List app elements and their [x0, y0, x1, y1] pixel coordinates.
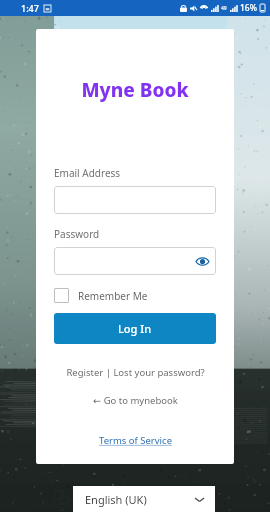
staticText: English (UK): [85, 492, 147, 507]
staticText: Remember Me: [78, 289, 148, 303]
staticText: Log In: [118, 321, 152, 336]
button[interactable]: Show password: [194, 253, 210, 269]
button[interactable]: English (UK): [73, 486, 215, 512]
staticText: Register | Lost your password?: [66, 366, 205, 379]
staticText: ← Go to mynebook: [93, 394, 178, 407]
staticText: Myne Book: [54, 77, 216, 103]
button[interactable]: Show password: [54, 247, 216, 275]
button[interactable]: Log In: [54, 313, 216, 344]
staticText: Email Address: [54, 166, 121, 180]
button[interactable]: [54, 186, 216, 214]
staticText: 49: [221, 5, 227, 12]
button[interactable]: Remember Me: [54, 288, 148, 303]
staticText: Terms of Service: [99, 434, 172, 447]
staticText: Password: [54, 227, 100, 241]
button[interactable]: Register | Lost your password?: [54, 366, 216, 379]
staticText: 1:47: [21, 2, 39, 14]
staticText: 16%: [240, 2, 257, 14]
button[interactable]: ← Go to mynebook: [54, 394, 216, 407]
button[interactable]: Terms of Service: [54, 434, 216, 447]
